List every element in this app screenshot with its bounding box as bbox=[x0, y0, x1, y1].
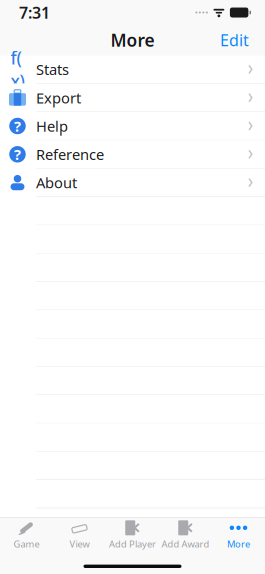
button[interactable]: View bbox=[53, 515, 106, 552]
staticText: 7:31 bbox=[19, 2, 50, 23]
button[interactable]: ? bbox=[0, 140, 265, 169]
staticText: View bbox=[69, 538, 89, 550]
button[interactable]: ? bbox=[0, 112, 265, 140]
staticText: Game bbox=[13, 538, 39, 550]
button[interactable]: Export bbox=[0, 84, 265, 112]
staticText: Edit bbox=[220, 29, 249, 51]
staticText: ? bbox=[14, 116, 21, 136]
staticText: More bbox=[110, 28, 154, 51]
button[interactable]: f(x) bbox=[0, 55, 265, 84]
staticText: ? bbox=[14, 145, 21, 164]
staticText: Add Award bbox=[161, 538, 209, 550]
button[interactable]: Game bbox=[0, 515, 53, 552]
button[interactable]: About bbox=[0, 169, 265, 197]
button[interactable]: Edit bbox=[210, 24, 259, 56]
staticText: More bbox=[227, 538, 250, 550]
button[interactable]: Add Player bbox=[106, 515, 159, 552]
staticText: Reference bbox=[36, 145, 104, 164]
staticText: Add Player bbox=[109, 538, 156, 550]
staticText: Help bbox=[36, 116, 68, 136]
staticText: f(x) bbox=[10, 46, 24, 92]
staticText: Export bbox=[36, 88, 81, 107]
staticText: Stats bbox=[36, 60, 69, 79]
button[interactable]: Add Award bbox=[159, 515, 212, 552]
button[interactable]: More bbox=[212, 515, 265, 552]
staticText: About bbox=[36, 173, 77, 192]
